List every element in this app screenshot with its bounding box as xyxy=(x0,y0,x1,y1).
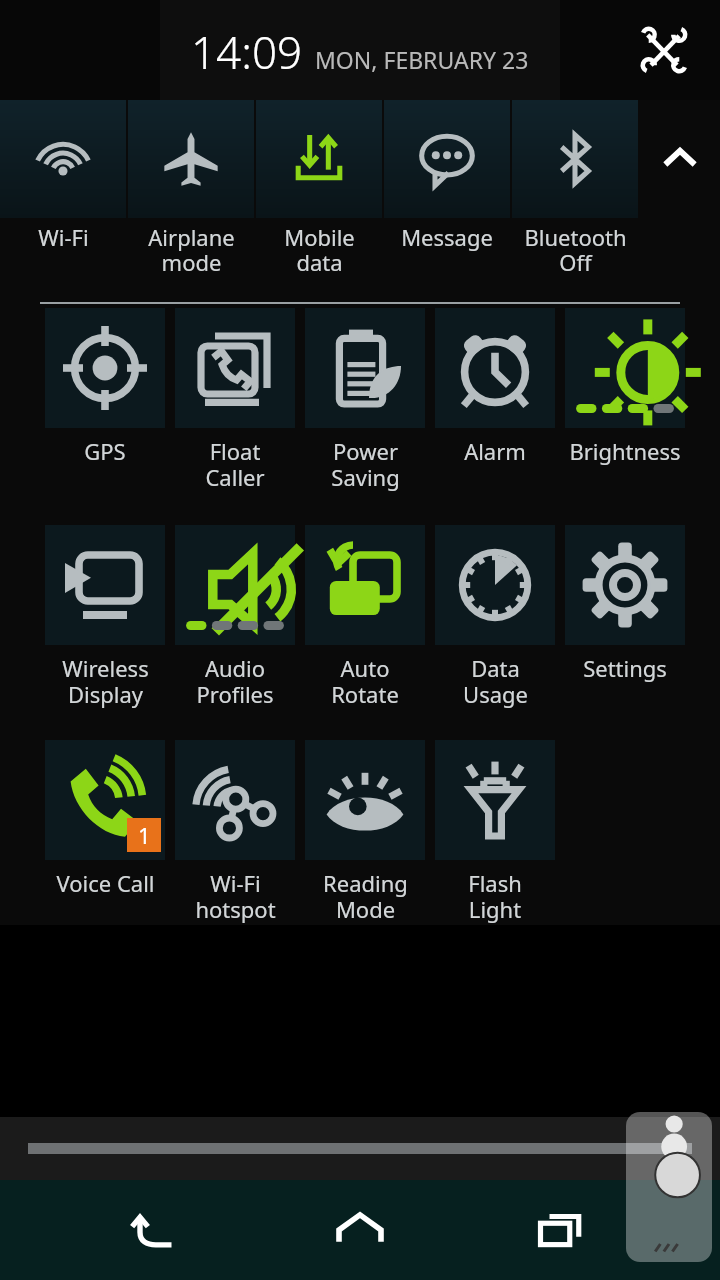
staticText: Wireless Display xyxy=(62,653,149,710)
staticText: Float Caller xyxy=(205,436,265,493)
button[interactable]: Settings xyxy=(560,525,690,683)
staticText: Auto Rotate xyxy=(331,653,399,710)
button[interactable]: Alarm xyxy=(430,308,560,466)
button[interactable]: Back xyxy=(113,1185,203,1275)
button[interactable]: Message xyxy=(384,100,510,218)
button[interactable]: Wireless Display xyxy=(40,525,170,710)
staticText: Wi-Fi xyxy=(38,222,89,252)
staticText: Voice Call xyxy=(56,868,155,898)
staticText: Message xyxy=(401,222,493,252)
staticText: Data Usage xyxy=(463,653,528,710)
button[interactable]: Power Saving xyxy=(300,308,430,493)
button[interactable]: Airplane mode xyxy=(128,100,254,218)
button[interactable]: Flash Light xyxy=(430,740,560,925)
button[interactable]: Bluetooth Off xyxy=(512,100,638,218)
button[interactable]: Panel handle xyxy=(28,1143,692,1154)
button[interactable]: Auto Rotate xyxy=(300,525,430,710)
staticText: Alarm xyxy=(464,436,526,466)
staticText: Airplane mode xyxy=(148,222,235,278)
staticText: Flash Light xyxy=(468,868,522,925)
button[interactable]: Brightness xyxy=(560,308,690,466)
staticText: Reading Mode xyxy=(323,868,408,925)
button[interactable]: Settings tools xyxy=(628,14,700,86)
button[interactable]: Audio Profiles xyxy=(170,525,300,710)
button[interactable]: Assistive touch xyxy=(626,1112,712,1262)
button[interactable]: Wi-Fi xyxy=(0,100,126,218)
staticText: 1 xyxy=(138,820,151,850)
staticText: Mobile data xyxy=(284,222,355,278)
staticText: Settings xyxy=(583,653,667,683)
button[interactable]: Data Usage xyxy=(430,525,560,710)
button[interactable]: Wi-Fi hotspot xyxy=(170,740,300,925)
button[interactable]: GPS xyxy=(40,308,170,466)
button[interactable]: Float Caller xyxy=(170,308,300,493)
button[interactable]: Reading Mode xyxy=(300,740,430,925)
staticText: Brightness xyxy=(569,436,681,466)
button[interactable]: Collapse xyxy=(640,100,720,218)
staticText: GPS xyxy=(84,436,126,466)
button[interactable]: Recents xyxy=(518,1185,608,1275)
staticText: Audio Profiles xyxy=(196,653,274,710)
button[interactable]: Voice Call xyxy=(40,740,170,898)
staticText: Power Saving xyxy=(331,436,400,493)
staticText: MON, FEBRUARY 23 xyxy=(315,44,529,75)
button[interactable]: Home xyxy=(315,1185,405,1275)
staticText: Bluetooth Off xyxy=(524,222,627,278)
staticText: 14:09 xyxy=(191,22,303,82)
button[interactable]: Mobile data xyxy=(256,100,382,218)
staticText: Wi-Fi hotspot xyxy=(195,868,276,925)
